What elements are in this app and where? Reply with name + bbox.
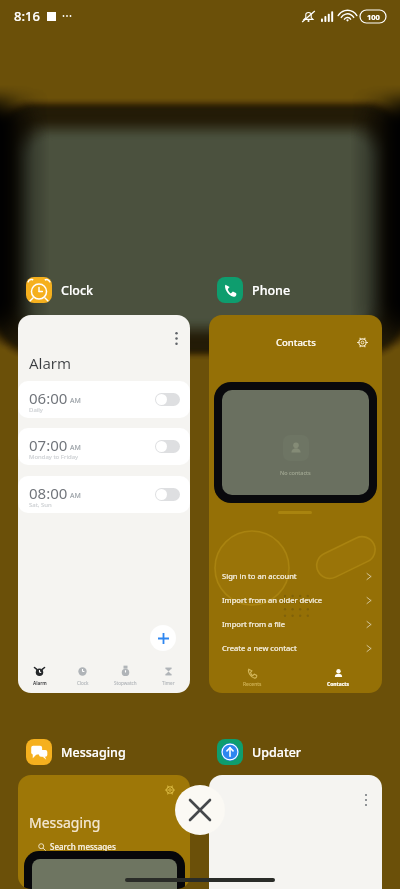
button[interactable]: Add alarm bbox=[150, 625, 176, 651]
button[interactable]: Stopwatch bbox=[104, 659, 147, 693]
button[interactable]: Settings bbox=[354, 334, 370, 350]
staticText: Contacts bbox=[276, 336, 316, 349]
staticText: Alarm bbox=[33, 680, 47, 686]
button[interactable]: Updater bbox=[217, 739, 302, 765]
button[interactable] bbox=[209, 775, 382, 889]
staticText: 07:00 bbox=[29, 435, 68, 455]
button[interactable]: Phone bbox=[217, 277, 291, 303]
staticText: Clock bbox=[61, 282, 94, 299]
staticText: Updater bbox=[252, 744, 302, 761]
button[interactable]: Create a new contact bbox=[209, 636, 382, 660]
staticText: Contacts bbox=[327, 681, 350, 688]
staticText: AM bbox=[70, 443, 81, 453]
staticText: 08:00 bbox=[29, 483, 68, 503]
staticText: Stopwatch bbox=[114, 680, 137, 686]
button[interactable]: Toggle alarm bbox=[155, 488, 180, 501]
staticText: 06:00 bbox=[29, 388, 68, 408]
button[interactable]: More options bbox=[18, 315, 190, 693]
button[interactable]: Toggle alarm bbox=[155, 440, 180, 453]
button[interactable]: Messaging bbox=[26, 739, 126, 765]
button[interactable]: 07:00 bbox=[18, 428, 190, 465]
staticText: Sat, Sun bbox=[29, 501, 52, 509]
button[interactable]: Clock bbox=[26, 277, 94, 303]
staticText: AM bbox=[70, 491, 81, 501]
button[interactable]: 08:00 bbox=[18, 476, 190, 513]
staticText: Recents bbox=[243, 681, 262, 688]
button[interactable]: Alarm bbox=[18, 659, 61, 693]
staticText: Daily bbox=[29, 406, 43, 414]
button[interactable]: Import from an older device bbox=[209, 588, 382, 612]
button[interactable]: More options bbox=[168, 329, 184, 345]
button[interactable]: Toggle alarm bbox=[155, 393, 180, 406]
staticText: Import from a file bbox=[222, 619, 286, 629]
button[interactable]: Timer bbox=[147, 659, 190, 693]
staticText: Create a new contact bbox=[222, 643, 297, 653]
button[interactable]: Settings bbox=[162, 782, 178, 798]
button[interactable]: Contacts bbox=[295, 663, 382, 693]
button[interactable]: Recents bbox=[209, 663, 295, 693]
button[interactable]: 06:00 bbox=[18, 381, 190, 418]
button[interactable]: Sign in to an account bbox=[209, 564, 382, 588]
staticText: Search messages bbox=[50, 841, 116, 852]
staticText: AM bbox=[70, 396, 81, 406]
button[interactable]: Close all bbox=[175, 785, 225, 835]
button[interactable]: Settings bbox=[18, 775, 190, 889]
staticText: 100 bbox=[367, 12, 380, 22]
staticText: Sign in to an account bbox=[222, 571, 297, 581]
staticText: No contacts bbox=[280, 469, 311, 476]
staticText: Monday to Friday bbox=[29, 453, 79, 461]
button[interactable]: Contacts bbox=[209, 315, 382, 693]
staticText: Clock bbox=[77, 680, 89, 686]
button[interactable]: Import from a file bbox=[209, 612, 382, 636]
button[interactable]: Clock bbox=[61, 659, 104, 693]
staticText: 8:16 bbox=[14, 7, 40, 25]
staticText: Alarm bbox=[29, 353, 72, 373]
staticText: Messaging bbox=[29, 813, 101, 832]
staticText: Timer bbox=[162, 680, 175, 686]
staticText: Messaging bbox=[61, 744, 126, 761]
staticText: Import from an older device bbox=[222, 595, 323, 605]
staticText: Phone bbox=[252, 282, 291, 299]
